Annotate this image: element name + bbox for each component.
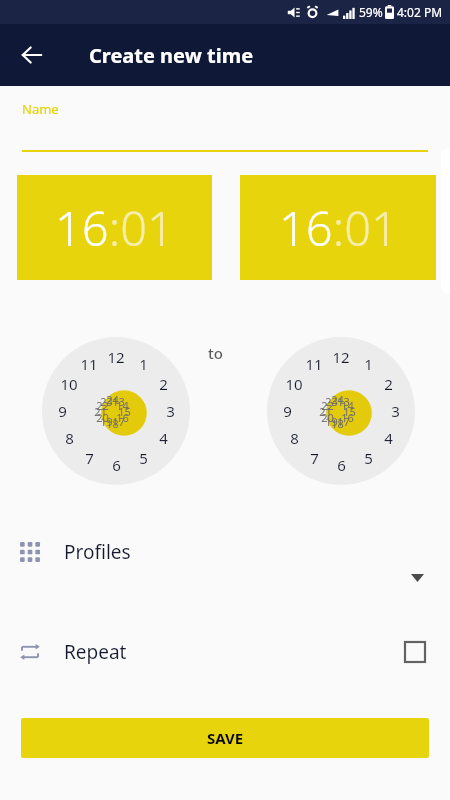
staticText: 6 [337,455,346,475]
staticText: 5 [364,448,373,468]
button[interactable]: 16:01 [240,175,436,280]
staticText: 18 [106,416,119,431]
staticText: 10 [60,374,78,394]
staticText: 4 [384,428,393,448]
staticText: 5 [139,448,148,468]
button[interactable]: Back [10,33,54,77]
staticText: Repeat [64,639,127,665]
staticText: Name [22,100,59,118]
button[interactable]: 16:01 [17,175,212,280]
staticText: 22 [96,398,109,413]
staticText: 11 [80,354,98,374]
button[interactable]: Time picker dial [267,337,415,485]
staticText: to [208,343,223,363]
staticText: 9 [283,401,292,421]
button[interactable]: SAVE [21,718,429,758]
staticText: 19 [325,414,338,429]
staticText: 23 [325,394,338,409]
staticText: 1 [364,354,373,374]
staticText: 4:02 PM [397,4,443,20]
other: Repeat checkbox [405,642,425,662]
staticText: 16 [116,410,129,425]
button[interactable]: Time picker dial [42,337,190,485]
staticText: 20 [96,410,109,425]
staticText: 21 [94,404,107,419]
staticText: 2 [384,374,393,394]
staticText: 7 [85,448,94,468]
other: Profiles [20,542,40,562]
staticText: SAVE [207,728,244,748]
staticText: 21 [319,404,332,419]
staticText: 4 [159,428,168,448]
staticText: 3 [166,401,175,421]
staticText: 7 [310,448,319,468]
staticText: 12 [332,347,350,367]
staticText: 24 [106,392,119,407]
staticText: Profiles [64,539,131,565]
staticText: 8 [65,428,74,448]
staticText: 18 [331,416,344,431]
staticText: 17 [112,414,125,429]
staticText: 9 [58,401,67,421]
staticText: 2 [159,374,168,394]
staticText: 24 [331,392,344,407]
staticText: 16:01 [55,196,174,260]
staticText: 6 [112,455,121,475]
button[interactable]: Repeat [0,629,450,675]
staticText: 22 [321,398,334,413]
staticText: 20 [321,410,334,425]
staticText: 1 [139,354,148,374]
staticText: 13 [337,394,350,409]
staticText: 59% [359,4,383,20]
staticText: 3 [391,401,400,421]
staticText: 14 [341,398,354,413]
staticText: 19 [100,414,113,429]
staticText: 17 [337,414,350,429]
staticText: Create new time [89,42,254,69]
staticText: 16 [341,410,354,425]
staticText: 16:01 [279,196,398,260]
staticText: 15 [343,404,356,419]
staticText: 10 [285,374,303,394]
button[interactable]: Profiles [0,530,450,574]
staticText: 8 [290,428,299,448]
staticText: 23 [100,394,113,409]
staticText: 12 [107,347,125,367]
staticText: 13 [112,394,125,409]
staticText: 15 [118,404,131,419]
staticText: 11 [305,354,323,374]
staticText: 14 [116,398,129,413]
